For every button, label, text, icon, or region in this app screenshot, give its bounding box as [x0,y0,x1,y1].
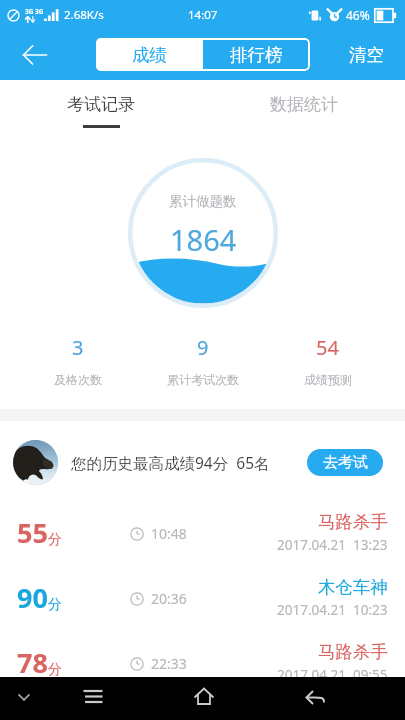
staticText: 您的历史最高成绩94分 65名 [71,452,270,473]
staticText: 去考试 [323,453,368,472]
button[interactable]: 您的历史最高成绩94分 65名 [0,421,405,503]
button[interactable]: 考试记录 [0,80,202,133]
staticText: 22:33 [151,654,187,673]
staticText: 90 [17,579,48,616]
button[interactable]: Collapse [11,684,37,710]
staticText: 马路杀手 [318,641,388,663]
button[interactable]: 90 [0,568,405,633]
staticText: 累计考试次数 [167,372,239,387]
staticText: 分 [48,531,62,549]
staticText: 2017.04.21 13:23 [277,536,388,554]
button[interactable]: Back [12,32,58,78]
button[interactable]: 9 [140,324,265,395]
staticText: 2017.04.21 09:55 [277,666,388,684]
staticText: 分 [48,596,62,614]
staticText: 3G 3G [25,7,44,16]
button[interactable]: 数据统计 [202,80,405,133]
staticText: 成绩 [132,44,167,66]
staticText: 马路杀手 [318,511,388,533]
staticText: 累计做题数 [169,193,237,210]
staticText: 1864 [170,220,237,259]
button[interactable]: 成绩 [96,38,203,71]
button[interactable]: 清空 [341,35,392,75]
staticText: 木仓车神 [318,576,388,598]
staticText: 78 [17,644,48,681]
button[interactable]: 排行榜 [203,38,310,71]
button[interactable]: Back [302,684,328,710]
staticText: 10:48 [151,524,187,543]
staticText: 2017.04.21 10:23 [277,601,388,619]
staticText: 清空 [349,44,384,66]
staticText: 及格次数 [54,372,102,387]
button[interactable]: 3 [15,324,140,395]
staticText: 考试记录 [67,94,135,115]
staticText: 2.68K/s [64,7,104,23]
staticText: 55 [17,514,48,551]
button[interactable]: Home [191,684,217,710]
staticText: 54 [316,334,339,361]
staticText: 9 [197,334,209,361]
staticText: 14:07 [188,7,218,23]
staticText: 46% [346,7,370,23]
staticText: 分 [48,661,62,679]
button[interactable]: 去考试 [307,449,383,476]
button[interactable]: 78 [0,633,405,698]
staticText: 数据统计 [270,94,338,115]
staticText: 3 [72,334,84,361]
staticText: 排行榜 [230,44,283,66]
staticText: 成绩预测 [304,372,352,387]
button[interactable]: Menu [80,684,106,710]
staticText: 20:36 [151,589,187,608]
button[interactable]: 55 [0,503,405,568]
button[interactable]: 54 [265,324,390,395]
